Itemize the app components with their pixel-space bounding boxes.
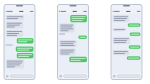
button[interactable]: Back to Messages	[113, 11, 120, 12]
button[interactable]: Add attachment	[113, 75, 116, 78]
button[interactable]: Add attachment	[6, 75, 9, 78]
button[interactable]: Back to Messages	[59, 11, 66, 12]
button[interactable]: Details	[83, 11, 87, 12]
button[interactable]: Back to Messages	[6, 11, 13, 12]
button[interactable]: Add attachment	[59, 75, 62, 78]
